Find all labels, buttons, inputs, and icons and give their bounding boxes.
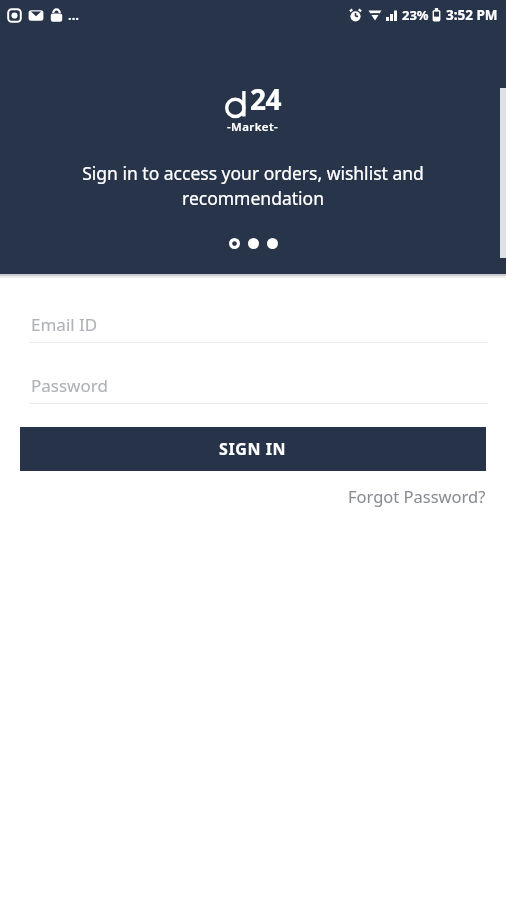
staticText: Forgot Password? xyxy=(348,485,486,507)
staticText: 24 xyxy=(250,80,282,118)
staticText: Sign in to access your orders, wishlist … xyxy=(34,161,472,211)
staticText: 23% xyxy=(402,6,429,24)
button[interactable]: Forgot Password? xyxy=(346,483,488,509)
button[interactable]: SIGN IN xyxy=(20,427,486,471)
staticText: 3:52 PM xyxy=(446,6,498,24)
staticText: ... xyxy=(68,6,79,24)
button[interactable]: Password xyxy=(0,367,506,403)
staticText: Email ID xyxy=(31,313,98,336)
staticText: Password xyxy=(31,374,108,397)
staticText: SIGN IN xyxy=(219,438,287,460)
staticText: -Market- xyxy=(227,119,279,135)
button[interactable]: Email ID xyxy=(0,306,506,342)
